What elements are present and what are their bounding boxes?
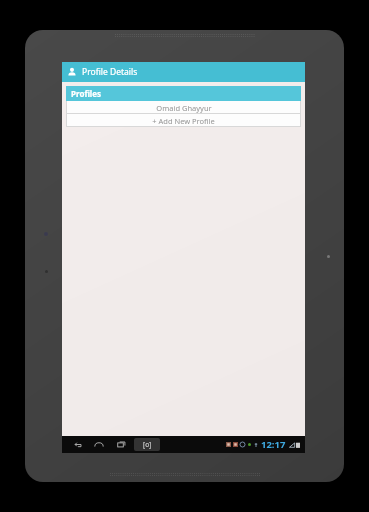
button[interactable]: Omaid Ghayyur xyxy=(66,101,301,114)
staticText: [o] xyxy=(143,440,152,449)
button[interactable]: Back xyxy=(68,436,88,453)
staticText: Profiles xyxy=(71,88,102,99)
staticText: Omaid Ghayyur xyxy=(156,103,212,113)
button[interactable]: Home xyxy=(88,436,110,453)
button[interactable]: + Add New Profile xyxy=(66,114,301,127)
button[interactable]: Screenshot xyxy=(134,438,160,451)
staticText: + Add New Profile xyxy=(152,116,215,126)
button[interactable]: Recent apps xyxy=(110,436,132,453)
staticText: Profile Details xyxy=(82,66,138,78)
other: Profile xyxy=(66,66,78,78)
button[interactable]: Profile xyxy=(62,62,305,82)
button[interactable]: Profiles xyxy=(66,86,301,101)
staticText: 12:17 xyxy=(261,438,286,451)
